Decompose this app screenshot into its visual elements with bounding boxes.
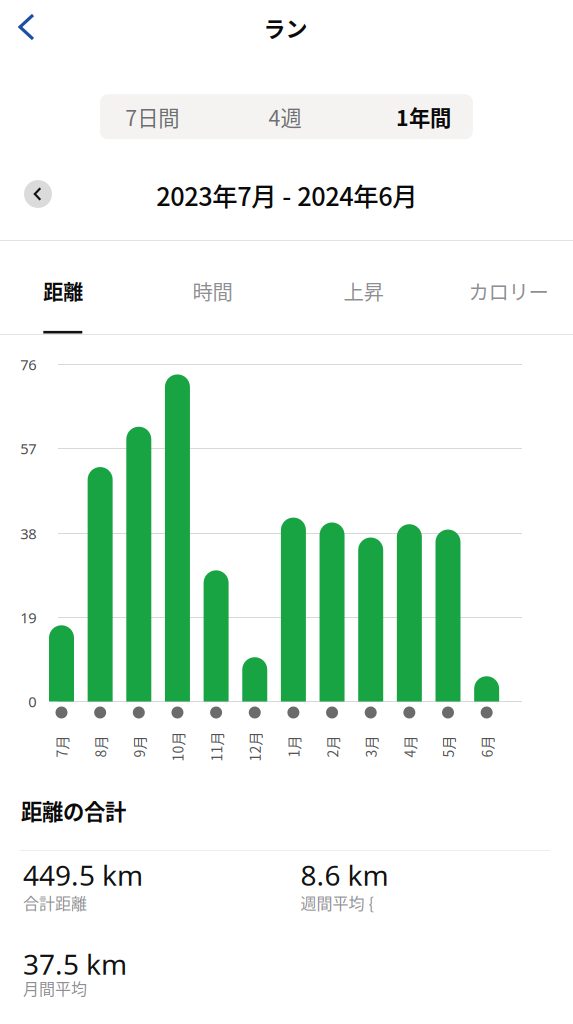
staticText: 距離 — [43, 276, 83, 305]
staticText: 合計距離 — [23, 891, 87, 914]
staticText: 5月 — [437, 736, 459, 757]
staticText: 57 — [20, 439, 36, 458]
button[interactable]: 4週 — [224, 94, 348, 139]
button[interactable]: 距離 — [8, 263, 118, 319]
staticText: 0 — [28, 692, 36, 711]
button[interactable]: 1年間 — [348, 94, 473, 139]
staticText: 距離の合計 — [21, 795, 126, 826]
staticText: ラン — [263, 12, 307, 43]
staticText: 3月 — [360, 736, 382, 757]
staticText: 7月 — [50, 736, 72, 757]
staticText: 19 — [20, 608, 36, 627]
button[interactable]: 7日間 — [100, 94, 224, 139]
staticText: カロリー — [468, 276, 548, 306]
staticText: 4週 — [268, 101, 301, 132]
staticText: 上昇 — [343, 276, 383, 306]
staticText: 9月 — [128, 736, 150, 757]
staticText: 週間平均 { — [300, 891, 373, 914]
staticText: 6月 — [476, 736, 498, 757]
staticText: 38 — [20, 524, 36, 543]
staticText: 1月 — [282, 736, 304, 757]
staticText: 月間平均 — [23, 976, 87, 1000]
staticText: 2月 — [321, 736, 343, 757]
button[interactable]: 上昇 — [308, 263, 418, 319]
staticText: 7日間 — [125, 101, 179, 132]
staticText: 12月 — [240, 736, 270, 757]
staticText: 2023年7月 - 2024年6月 — [156, 177, 417, 213]
staticText: 8.6 km — [300, 856, 388, 894]
staticText: 8月 — [89, 736, 111, 757]
button[interactable]: カロリー — [453, 263, 563, 319]
staticText: 76 — [20, 355, 36, 374]
staticText: 時間 — [192, 276, 232, 306]
button[interactable]: 戻る — [4, 5, 48, 49]
button[interactable]: 前の期間 — [24, 180, 52, 208]
button[interactable]: 時間 — [157, 263, 267, 319]
staticText: 11月 — [201, 736, 231, 757]
staticText: 1年間 — [396, 101, 451, 132]
staticText: 449.5 km — [23, 856, 143, 894]
staticText: 37.5 km — [23, 945, 127, 983]
staticText: 4月 — [398, 736, 420, 757]
staticText: 10月 — [162, 736, 192, 757]
